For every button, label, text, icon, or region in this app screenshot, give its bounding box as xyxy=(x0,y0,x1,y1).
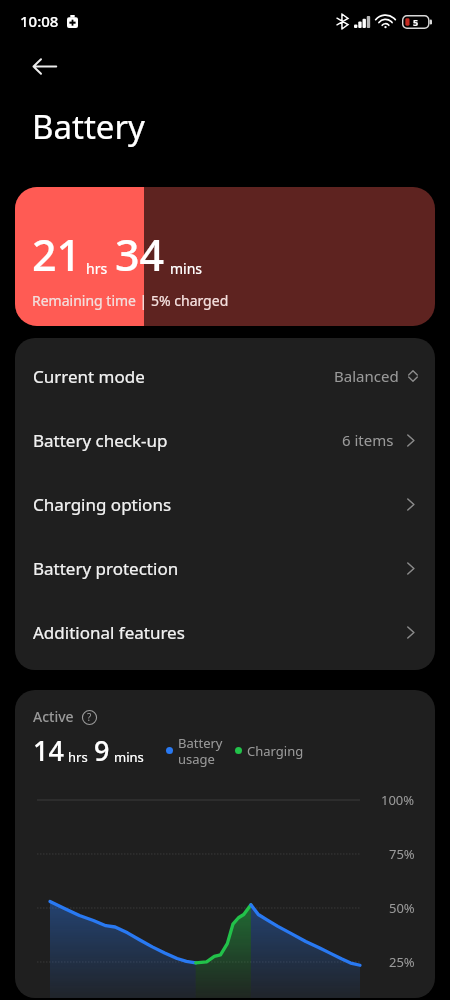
staticText: 10:08 xyxy=(20,11,59,31)
staticText: Battery xyxy=(32,104,145,149)
staticText: Current mode xyxy=(33,365,145,388)
staticText: Balanced xyxy=(334,366,399,386)
button[interactable]: Current mode xyxy=(15,344,435,408)
button[interactable]: Back xyxy=(20,42,68,90)
staticText: ? xyxy=(87,710,92,724)
staticText: Charging options xyxy=(33,493,172,516)
staticText: hrs xyxy=(86,259,108,278)
staticText: Battery usage xyxy=(178,734,223,767)
staticText: 50% xyxy=(389,899,415,917)
button[interactable]: Charging options xyxy=(15,472,435,536)
button[interactable]: Help xyxy=(80,708,98,726)
button[interactable]: Additional features xyxy=(15,600,435,664)
staticText: Additional features xyxy=(33,621,185,644)
staticText: hrs xyxy=(68,748,88,766)
staticText: 21 xyxy=(32,225,82,284)
staticText: 34 xyxy=(115,225,165,284)
staticText: mins xyxy=(114,748,144,766)
staticText: Active xyxy=(33,707,74,726)
button[interactable]: Battery check-up xyxy=(15,408,435,472)
staticText: 75% xyxy=(389,845,415,863)
button[interactable]: 21 xyxy=(15,187,435,326)
staticText: 6 items xyxy=(342,430,394,450)
staticText: Remaining time | 5% charged xyxy=(32,291,229,310)
staticText: mins xyxy=(170,259,203,278)
staticText: Battery check-up xyxy=(33,429,168,452)
staticText: Battery protection xyxy=(33,557,179,580)
button[interactable]: Battery protection xyxy=(15,536,435,600)
staticText: 14 xyxy=(33,732,64,769)
staticText: Charging xyxy=(247,742,304,760)
staticText: 5 xyxy=(413,16,419,28)
staticText: 9 xyxy=(94,732,110,769)
staticText: 25% xyxy=(389,953,415,971)
staticText: 100% xyxy=(381,791,415,809)
